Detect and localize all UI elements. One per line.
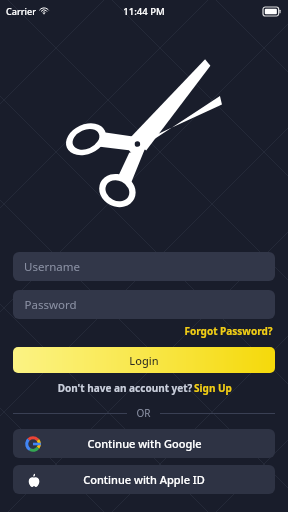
staticText: Forgot Password?: [184, 324, 273, 338]
button[interactable]: Forgot Password?: [182, 322, 275, 340]
button[interactable]: Don't have an account yet?: [56, 379, 232, 397]
staticText: Don't have an account yet?: [56, 381, 194, 395]
staticText: Continue with Google: [87, 436, 202, 451]
staticText: Carrier: [6, 5, 36, 17]
button[interactable]: Password: [13, 290, 275, 319]
button[interactable]: Continue with Google: [13, 429, 275, 458]
button[interactable]: Login: [13, 347, 275, 373]
button[interactable]: Username: [13, 252, 275, 281]
staticText: Continue with Apple ID: [83, 472, 205, 487]
staticText: Password: [24, 297, 77, 313]
staticText: OR: [136, 406, 151, 420]
staticText: Login: [129, 353, 159, 368]
staticText: Sign Up: [194, 381, 232, 395]
staticText: Username: [24, 259, 80, 275]
button[interactable]: Continue with Apple ID: [13, 465, 275, 494]
staticText: 11:44 PM: [123, 5, 165, 18]
